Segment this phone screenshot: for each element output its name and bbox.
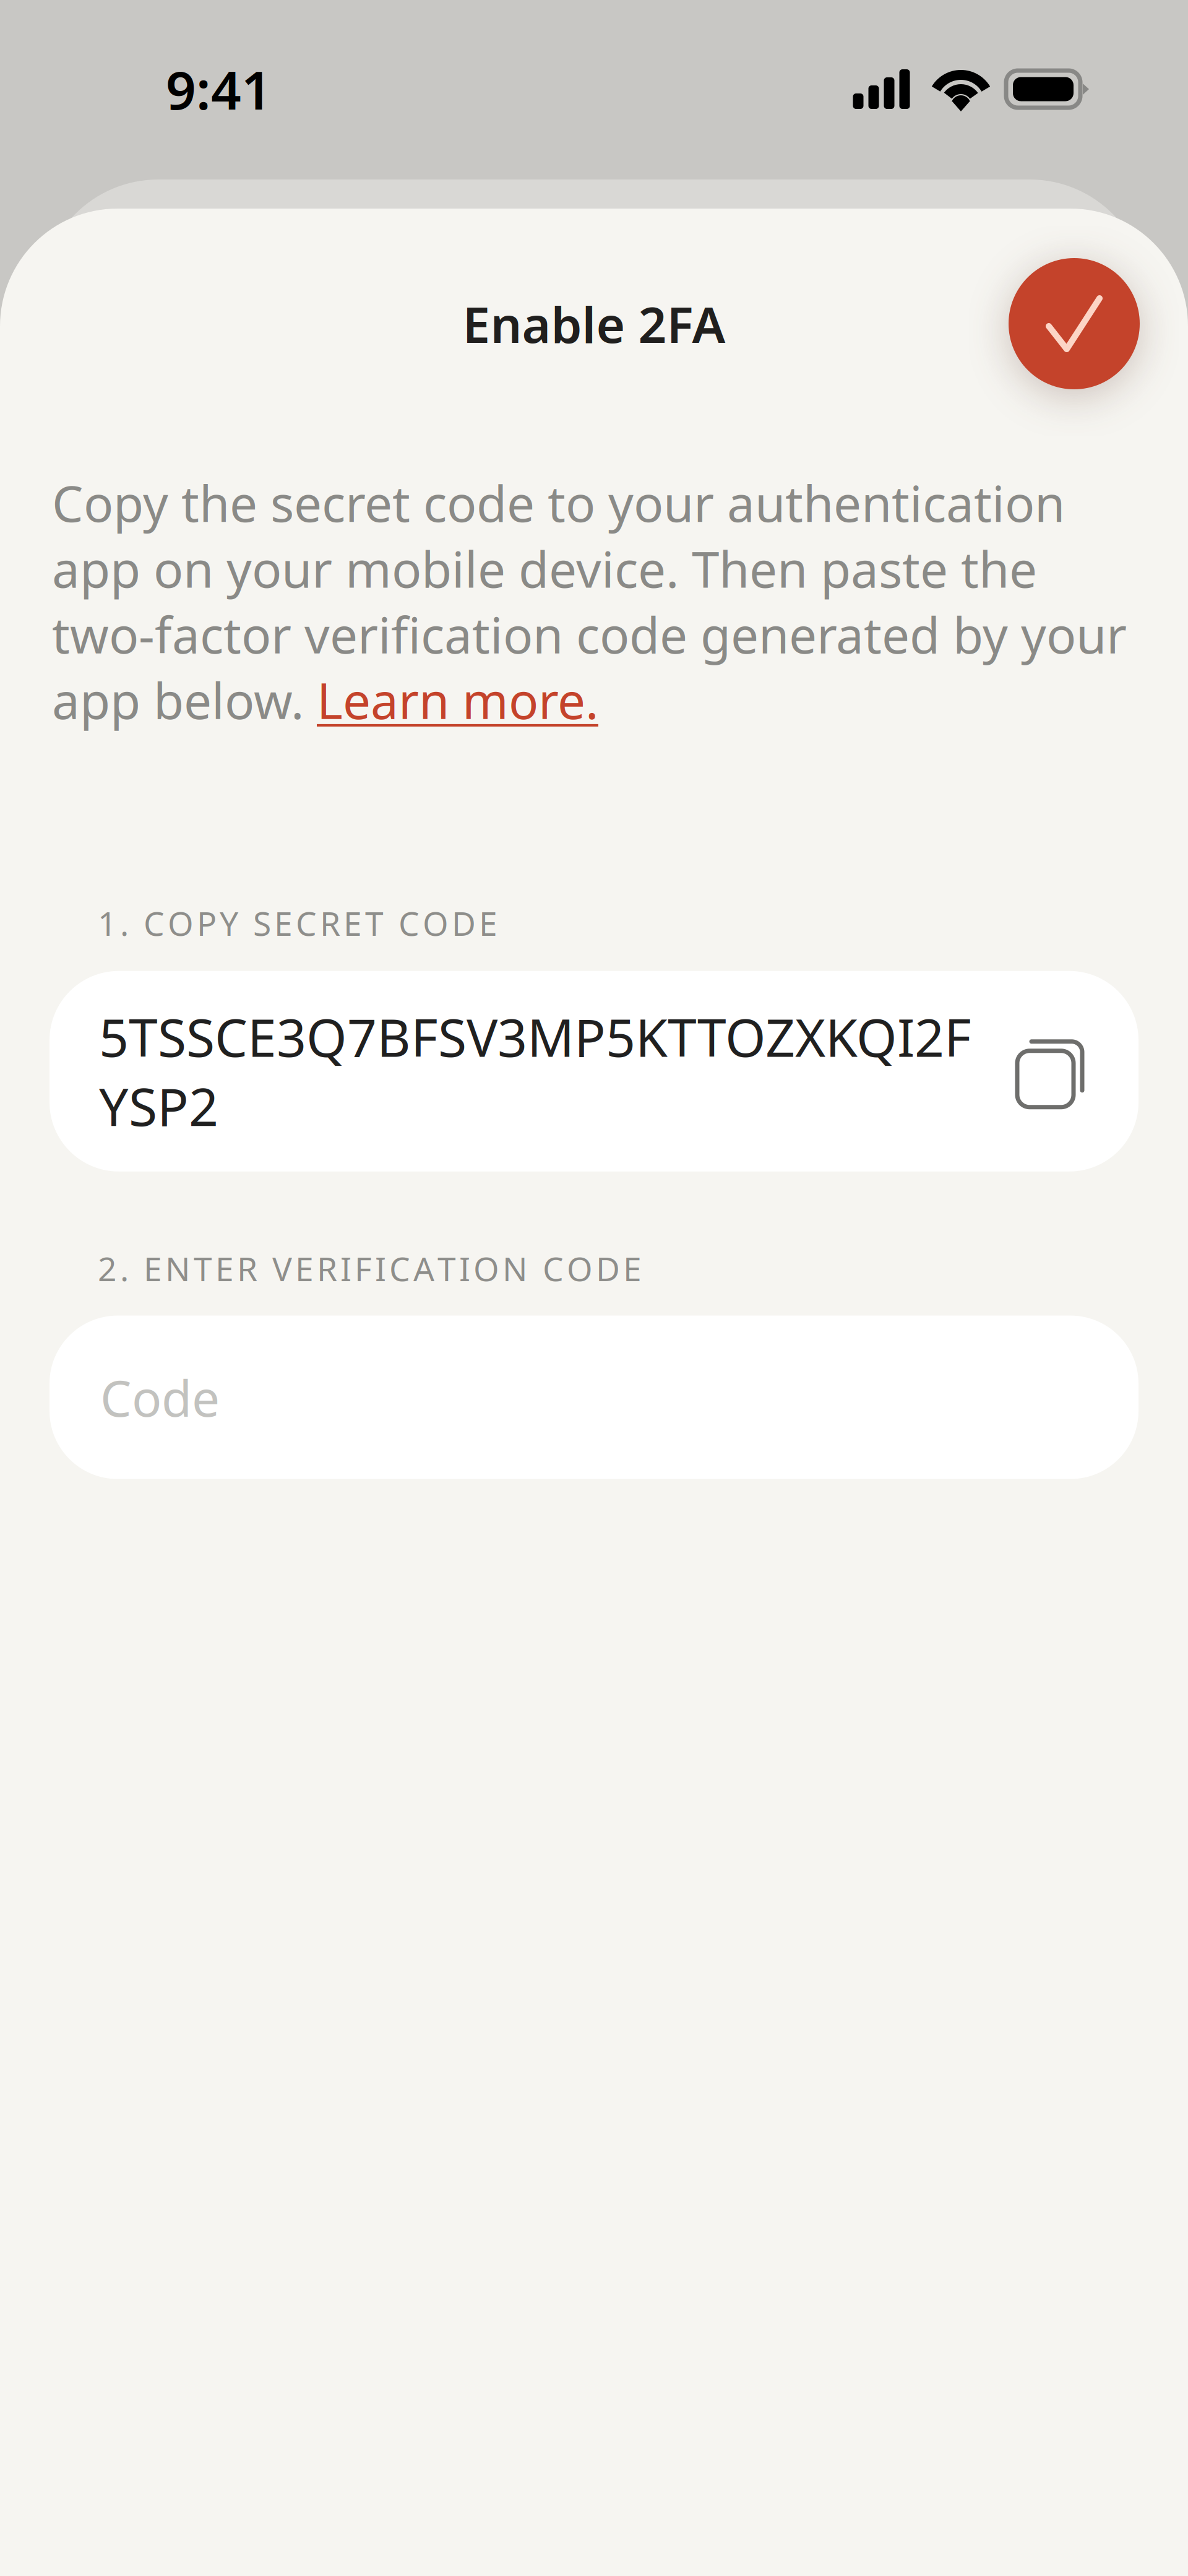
button[interactable]: Enter verification code [49,1316,1138,1479]
staticText: Copy the secret code to your authenticat… [52,470,1127,733]
button[interactable]: Confirm [1009,258,1140,389]
staticText: YSP2 [99,1071,218,1140]
staticText: 5TSSCE3Q7BFSV3MP5KTTOZXKQI2F [99,1002,971,1071]
button[interactable]: Copy secret code [49,971,1138,1172]
staticText: 1 . C O P Y S E C R E T C O D E [98,901,497,945]
staticText: 9:41 [166,54,272,124]
staticText: Code [100,1364,220,1430]
staticText: 2 . E N T E R V E R I F I C A T I O N C … [98,1246,642,1290]
staticText: Enable 2FA [463,291,725,357]
